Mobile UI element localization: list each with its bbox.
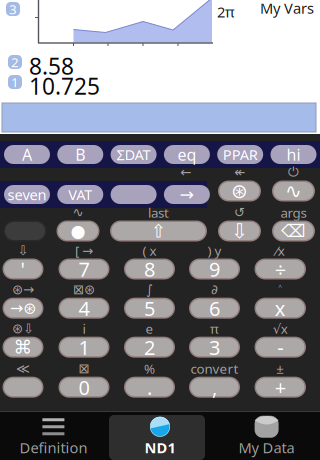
staticText: VAT: [68, 185, 92, 204]
staticText: 2π: [217, 2, 235, 21]
staticText: →: [179, 185, 194, 204]
staticText: ∂: [211, 282, 218, 297]
staticText: ↺: [234, 205, 245, 220]
staticText: eq: [177, 144, 196, 165]
button[interactable]: 2: [124, 337, 175, 358]
staticText: √x: [273, 320, 288, 337]
button[interactable]: ÷: [254, 258, 306, 279]
staticText: ↞: [234, 165, 245, 180]
staticText: ⏻: [288, 166, 299, 179]
staticText: ⊛→: [12, 282, 34, 297]
staticText: 10.725: [29, 71, 100, 101]
button[interactable]: +: [254, 377, 306, 398]
staticText: %: [144, 360, 155, 377]
staticText: ⇩: [17, 243, 28, 258]
button[interactable]: 6: [189, 298, 240, 319]
button[interactable]: A: [4, 145, 50, 164]
staticText: →⊛: [10, 299, 36, 317]
staticText: 3: [9, 0, 17, 18]
staticText: 1: [78, 334, 89, 360]
staticText: ': [20, 256, 25, 282]
staticText: 6: [209, 295, 220, 321]
button[interactable]: hi: [270, 145, 316, 164]
staticText: A: [22, 144, 32, 165]
button[interactable]: ⇩: [218, 220, 261, 241]
staticText: 9: [209, 256, 220, 282]
staticText: 2: [144, 334, 155, 360]
button[interactable]: ,: [189, 377, 240, 398]
button[interactable]: eq: [164, 145, 210, 164]
staticText: ND1: [144, 438, 175, 457]
staticText: seven: [7, 185, 46, 204]
button[interactable]: -: [254, 337, 306, 358]
button[interactable]: →⊛: [2, 298, 43, 319]
staticText: 2: [11, 53, 19, 71]
button[interactable]: 9: [189, 258, 240, 279]
button[interactable]: 4: [58, 298, 109, 319]
staticText: π: [210, 320, 219, 337]
staticText: ⊛⇩: [12, 321, 34, 336]
button[interactable]: My Vars: [258, 0, 316, 16]
staticText: ,: [212, 374, 217, 400]
staticText: ÷: [275, 256, 286, 282]
staticText: e: [145, 320, 153, 337]
button[interactable]: ⇧: [110, 220, 207, 241]
button[interactable]: ∿: [272, 180, 315, 201]
staticText: 1: [11, 73, 19, 91]
staticText: ΣDAT: [117, 145, 151, 164]
staticText: .: [147, 374, 152, 400]
staticText: -: [277, 334, 283, 360]
button[interactable]: →: [164, 185, 210, 204]
staticText: ( x: [142, 242, 156, 259]
staticText: ⁄x: [276, 242, 285, 259]
button[interactable]: [2, 377, 43, 398]
staticText: ⇩: [231, 220, 248, 242]
button[interactable]: Definition: [0, 411, 107, 460]
staticText: 8.58: [29, 51, 74, 81]
staticText: B: [75, 144, 85, 165]
button[interactable]: seven: [4, 185, 50, 204]
staticText: 0: [78, 374, 89, 400]
staticText: 7: [78, 256, 89, 282]
staticText: ⊛: [231, 180, 248, 202]
staticText: My Vars: [260, 0, 314, 18]
staticText: ←: [180, 165, 191, 180]
button[interactable]: .: [124, 377, 175, 398]
staticText: ˄: [278, 281, 282, 298]
staticText: ⊠: [78, 361, 89, 376]
button[interactable]: 7: [58, 258, 109, 279]
staticText: [ →: [75, 242, 93, 259]
button[interactable]: B: [57, 145, 103, 164]
button[interactable]: ND1: [107, 411, 213, 460]
button[interactable]: ●: [56, 220, 99, 241]
staticText: ⌫: [281, 221, 306, 241]
staticText: hi: [286, 144, 300, 165]
staticText: +: [275, 374, 286, 400]
button[interactable]: ⊛: [218, 180, 261, 201]
staticText: ∿: [72, 205, 83, 220]
button[interactable]: ': [2, 258, 43, 279]
button[interactable]: ΣDAT: [111, 145, 157, 164]
button[interactable]: [111, 185, 157, 204]
button[interactable]: [3, 220, 46, 241]
button[interactable]: ⌘: [2, 337, 43, 358]
staticText: ⇧: [150, 220, 166, 242]
staticText: 5: [144, 295, 155, 321]
button[interactable]: 3: [189, 337, 240, 358]
staticText: ⊠⊛: [73, 282, 95, 297]
staticText: last: [148, 204, 169, 221]
button[interactable]: x: [254, 298, 306, 319]
button[interactable]: 8: [124, 258, 175, 279]
button[interactable]: 5: [124, 298, 175, 319]
staticText: args: [280, 204, 306, 221]
button[interactable]: 0: [58, 377, 109, 398]
button[interactable]: VAT: [57, 185, 103, 204]
staticText: ●: [70, 221, 85, 241]
staticText: 8: [144, 256, 155, 282]
button[interactable]: My Data: [213, 411, 320, 460]
button[interactable]: PPAR: [217, 145, 263, 164]
staticText: ⌘: [13, 337, 32, 358]
staticText: My Data: [239, 438, 295, 457]
button[interactable]: ⌫: [272, 220, 315, 241]
button[interactable]: 1: [58, 337, 109, 358]
